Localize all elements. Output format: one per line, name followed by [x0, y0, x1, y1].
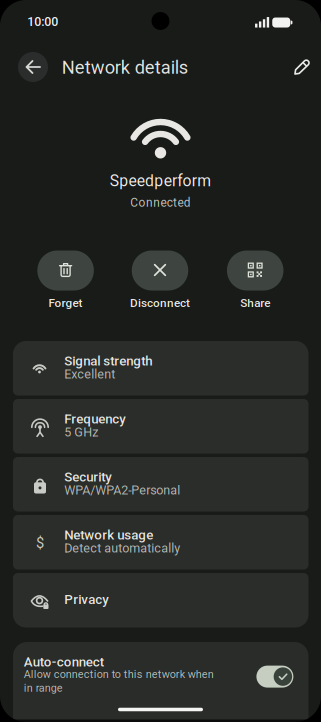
button[interactable]: $ [13, 515, 308, 569]
staticText: 5 GHz [64, 425, 98, 440]
button[interactable] [256, 666, 293, 688]
button[interactable]: Share [221, 249, 289, 313]
staticText: Share [240, 296, 270, 310]
staticText: Forget [49, 296, 83, 310]
staticText: in range [24, 682, 63, 694]
staticText: Connected [130, 196, 191, 210]
staticText: 10:00 [27, 14, 58, 29]
staticText: Network details [62, 57, 188, 78]
button[interactable]: Frequency [13, 399, 308, 453]
button[interactable] [293, 58, 311, 76]
staticText: Signal strength [64, 353, 152, 369]
staticText: Disconnect [130, 296, 190, 310]
staticText: $ [36, 534, 44, 552]
button[interactable]: Security [13, 457, 308, 511]
staticText: Privacy [64, 592, 109, 607]
button[interactable]: Signal strength [13, 341, 308, 395]
button[interactable]: Disconnect [126, 249, 194, 313]
button[interactable]: Auto-connect [13, 642, 308, 722]
staticText: Frequency [64, 411, 126, 427]
staticText: Detect automatically [64, 541, 180, 556]
staticText: Speedperform [110, 172, 211, 190]
staticText: WPA/WPA2-Personal [64, 483, 180, 498]
staticText: Network usage [64, 527, 153, 543]
staticText: Security [64, 469, 112, 485]
button[interactable] [18, 52, 48, 82]
staticText: Auto-connect [24, 654, 104, 670]
button[interactable]: Privacy [13, 573, 308, 627]
button[interactable]: Forget [32, 249, 100, 313]
staticText: Excellent [64, 367, 115, 382]
staticText: Allow connection to this network when [24, 668, 214, 681]
